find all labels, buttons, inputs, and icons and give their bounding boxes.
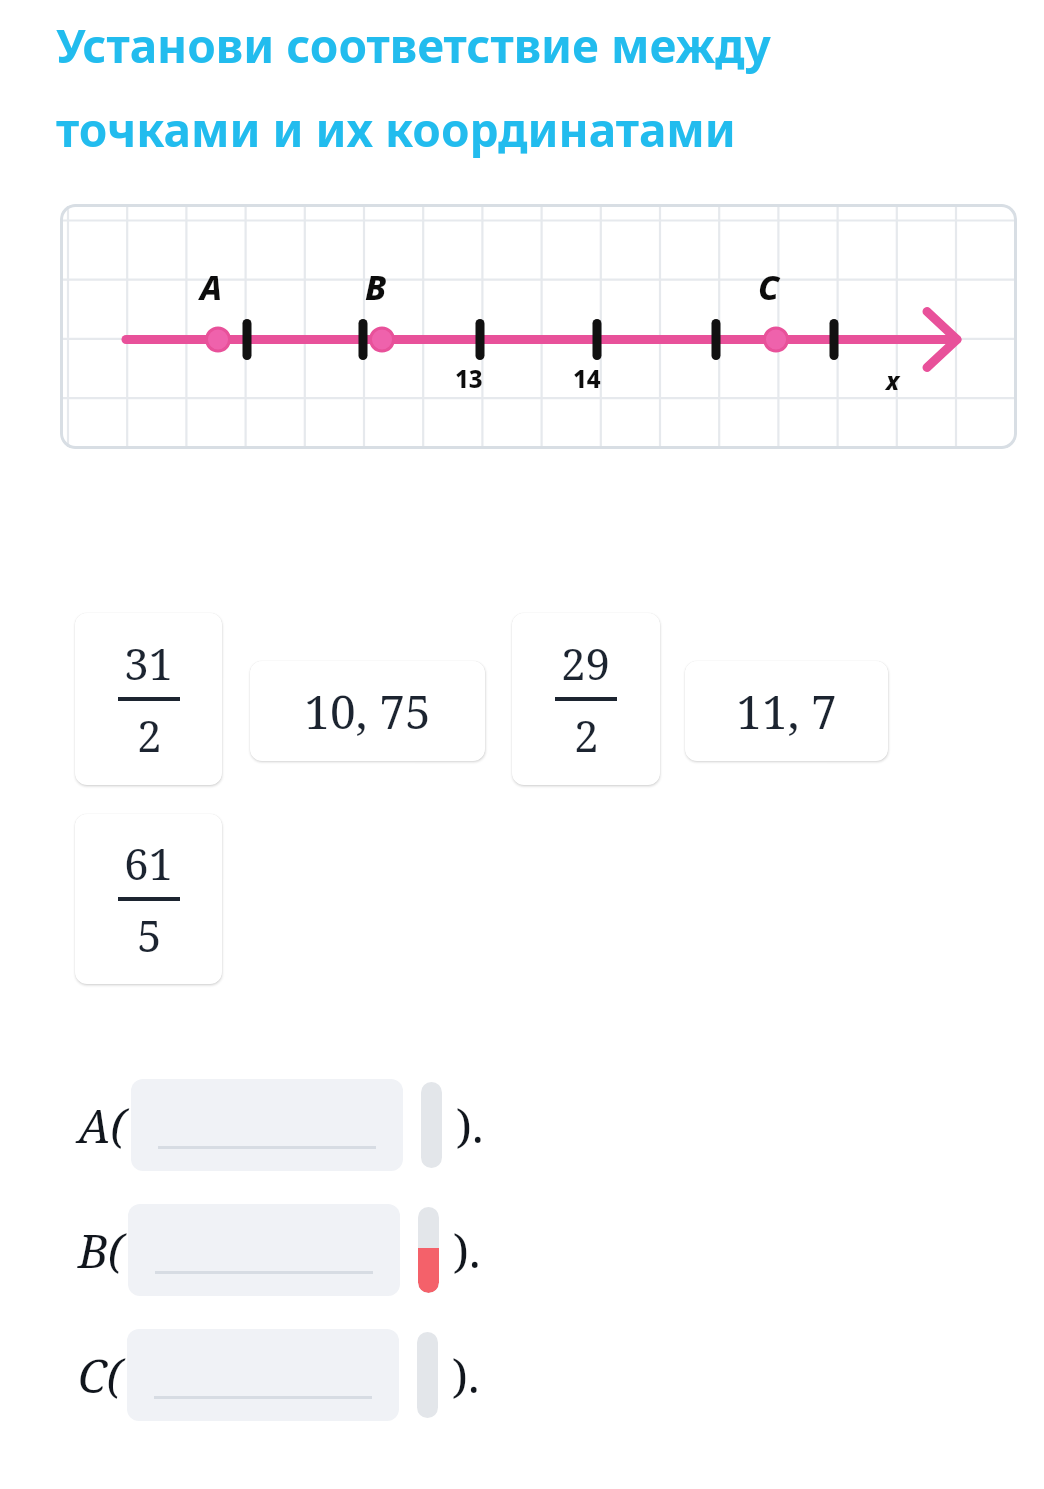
staticText: A [200,264,223,310]
staticText: A( [78,1094,127,1157]
button[interactable] [131,1079,403,1171]
button[interactable] [128,1204,400,1296]
staticText: ). [456,1094,484,1157]
staticText: B [365,264,387,310]
staticText: ). [452,1344,480,1407]
staticText: 2 [574,705,599,765]
other: Answer status for A [421,1082,442,1168]
button[interactable] [127,1329,399,1421]
staticText: 13 [455,362,483,395]
button[interactable]: 31 [75,613,222,785]
staticText: Установи соответствие между точками и их… [56,14,771,160]
staticText: ). [453,1219,481,1282]
staticText: C( [78,1344,123,1407]
staticText: 5 [137,905,162,965]
staticText: 14 [573,362,601,395]
staticText: 31 [124,633,174,693]
staticText: 29 [561,633,611,693]
button[interactable]: 61 [75,814,222,984]
button[interactable]: 11, 7 [685,661,888,761]
other: Answer status for B [418,1207,439,1293]
staticText: 11, 7 [736,680,837,743]
button[interactable]: 10, 75 [250,661,485,761]
staticText: x [886,364,900,397]
other: Answer status for C [417,1332,438,1418]
staticText: 10, 75 [304,680,431,743]
staticText: B( [78,1219,124,1282]
staticText: 2 [137,705,162,765]
staticText: 61 [124,833,174,893]
staticText: C [758,264,780,310]
button[interactable]: 29 [512,613,660,785]
